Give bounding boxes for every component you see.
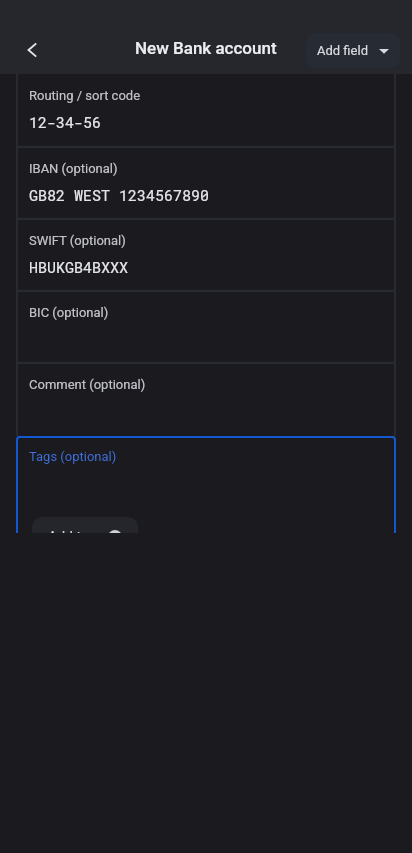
button[interactable]: Comment (optional) [16,364,396,438]
staticText: BIC (optional) [29,305,109,320]
staticText: Routing / sort code [29,88,141,103]
button[interactable]: IBAN (optional) [16,148,396,218]
button[interactable]: Back [8,26,56,74]
staticText: 12-34-56 [29,112,102,132]
staticText: SWIFT (optional) [29,233,126,248]
button[interactable]: SWIFT (optional) [16,220,396,290]
staticText: Tags (optional) [29,449,117,464]
button[interactable]: BIC (optional) [16,292,396,362]
button[interactable]: Add tag [32,517,138,533]
button[interactable]: Add field [306,33,400,68]
staticText: Add field [317,43,368,58]
staticText: Comment (optional) [29,377,146,392]
staticText: New Bank account [135,38,277,58]
staticText: Add tag [48,529,97,533]
staticText: IBAN (optional) [29,161,118,176]
button[interactable]: Routing / sort code [16,51,396,146]
staticText: HBUKGB4BXXX [29,257,129,277]
staticText: GB82 WEST 1234567890 [29,185,210,205]
button[interactable]: Tags (optional) [16,436,396,533]
